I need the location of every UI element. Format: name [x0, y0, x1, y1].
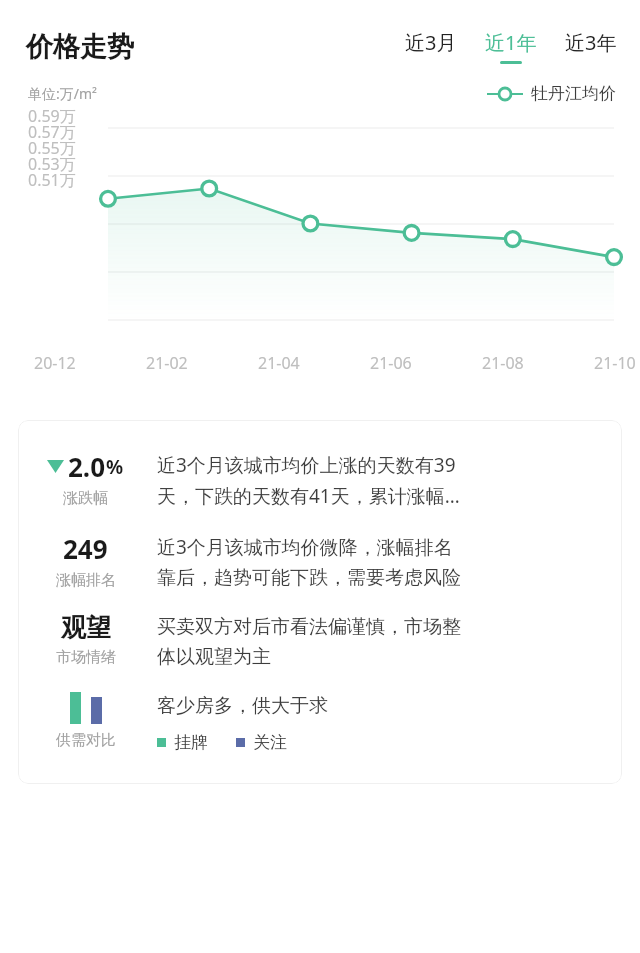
staticText: 近3年	[565, 29, 617, 56]
staticText: 供需对比	[56, 731, 116, 750]
staticText: 249	[63, 531, 108, 566]
staticText: 0.51万	[28, 169, 76, 191]
staticText: %	[106, 454, 124, 480]
staticText: 近3个月该城市均价上涨的天数有39 天，下跌的天数有41天，累计涨幅…	[157, 452, 612, 509]
staticText: 挂牌	[174, 732, 208, 753]
staticText: 关注	[253, 732, 287, 753]
staticText: 观望	[61, 612, 111, 643]
staticText: 牡丹江均价	[531, 83, 616, 104]
staticText: 单位:万/m²	[28, 84, 97, 103]
staticText: 价格走势	[26, 30, 134, 64]
staticText: 21-04	[258, 352, 300, 374]
staticText: 近3个月该城市均价微降，涨幅排名 靠后，趋势可能下跌，需要考虑风险	[157, 534, 612, 590]
button[interactable]: 近3月	[402, 26, 460, 67]
button[interactable]: 近1年	[482, 26, 540, 67]
staticText: 2.0	[68, 449, 106, 484]
staticText: 0.59万	[28, 105, 76, 127]
staticText: 近3月	[405, 29, 457, 56]
staticText: 21-06	[370, 352, 412, 374]
staticText: 买卖双方对后市看法偏谨慎，市场整 体以观望为主	[157, 615, 612, 669]
staticText: 近1年	[485, 29, 537, 56]
button[interactable]: 249	[18, 520, 622, 601]
staticText: 市场情绪	[56, 648, 116, 667]
button[interactable]: 观望	[18, 601, 622, 680]
staticText: 0.53万	[28, 153, 76, 175]
staticText: 20-12	[34, 352, 76, 374]
staticText: 客少房多，供大于求	[157, 694, 328, 718]
staticText: 21-02	[146, 352, 188, 374]
staticText: 21-08	[482, 352, 524, 374]
staticText: 21-10	[594, 352, 636, 374]
staticText: 涨跌幅	[63, 489, 108, 508]
staticText: 涨幅排名	[56, 571, 116, 590]
staticText: 0.55万	[28, 137, 76, 159]
button[interactable]: 近3年	[562, 26, 620, 67]
staticText: 0.57万	[28, 121, 76, 143]
button[interactable]: 供需对比	[18, 680, 622, 764]
button[interactable]: 2.0	[18, 438, 622, 520]
